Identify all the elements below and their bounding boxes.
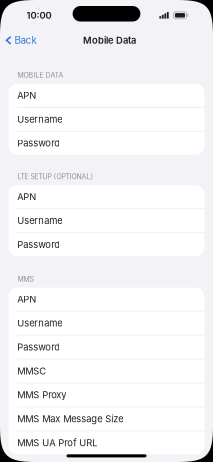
button[interactable]: MMSC [9,359,204,383]
button[interactable]: MMS UA Prof URL [9,431,204,454]
staticText: Username [17,317,62,329]
staticText: Password [17,239,60,250]
staticText: Username [17,114,62,125]
staticText: MMSC [17,365,46,377]
staticText: Username [17,215,62,226]
staticText: MOBILE DATA [18,71,64,79]
staticText: Back [15,34,37,46]
staticText: Password [17,137,60,149]
button[interactable]: Back [0,31,43,50]
staticText: Mobile Data [83,35,136,46]
button[interactable]: APN [9,84,204,107]
staticText: MMS Proxy [17,389,66,401]
staticText: APN [17,293,36,305]
button[interactable]: APN [9,185,204,208]
button[interactable]: Username [9,209,204,232]
button[interactable]: Password [9,233,204,256]
button[interactable]: Password [9,132,204,155]
button[interactable]: APN [9,288,204,311]
button[interactable]: Password [9,335,204,359]
button[interactable]: MMS Max Message Size [9,407,204,430]
staticText: APN [17,191,36,202]
staticText: LTE SETUP (OPTIONAL) [18,173,94,181]
button[interactable]: Username [9,311,204,335]
staticText: Password [17,341,60,353]
staticText: MMS [18,275,34,283]
staticText: MMS Max Message Size [17,413,123,425]
staticText: MMS UA Prof URL [17,437,97,448]
button[interactable]: MMS Proxy [9,383,204,407]
staticText: 10:00 [26,10,51,21]
button[interactable]: Username [9,108,204,131]
staticText: APN [17,90,36,101]
